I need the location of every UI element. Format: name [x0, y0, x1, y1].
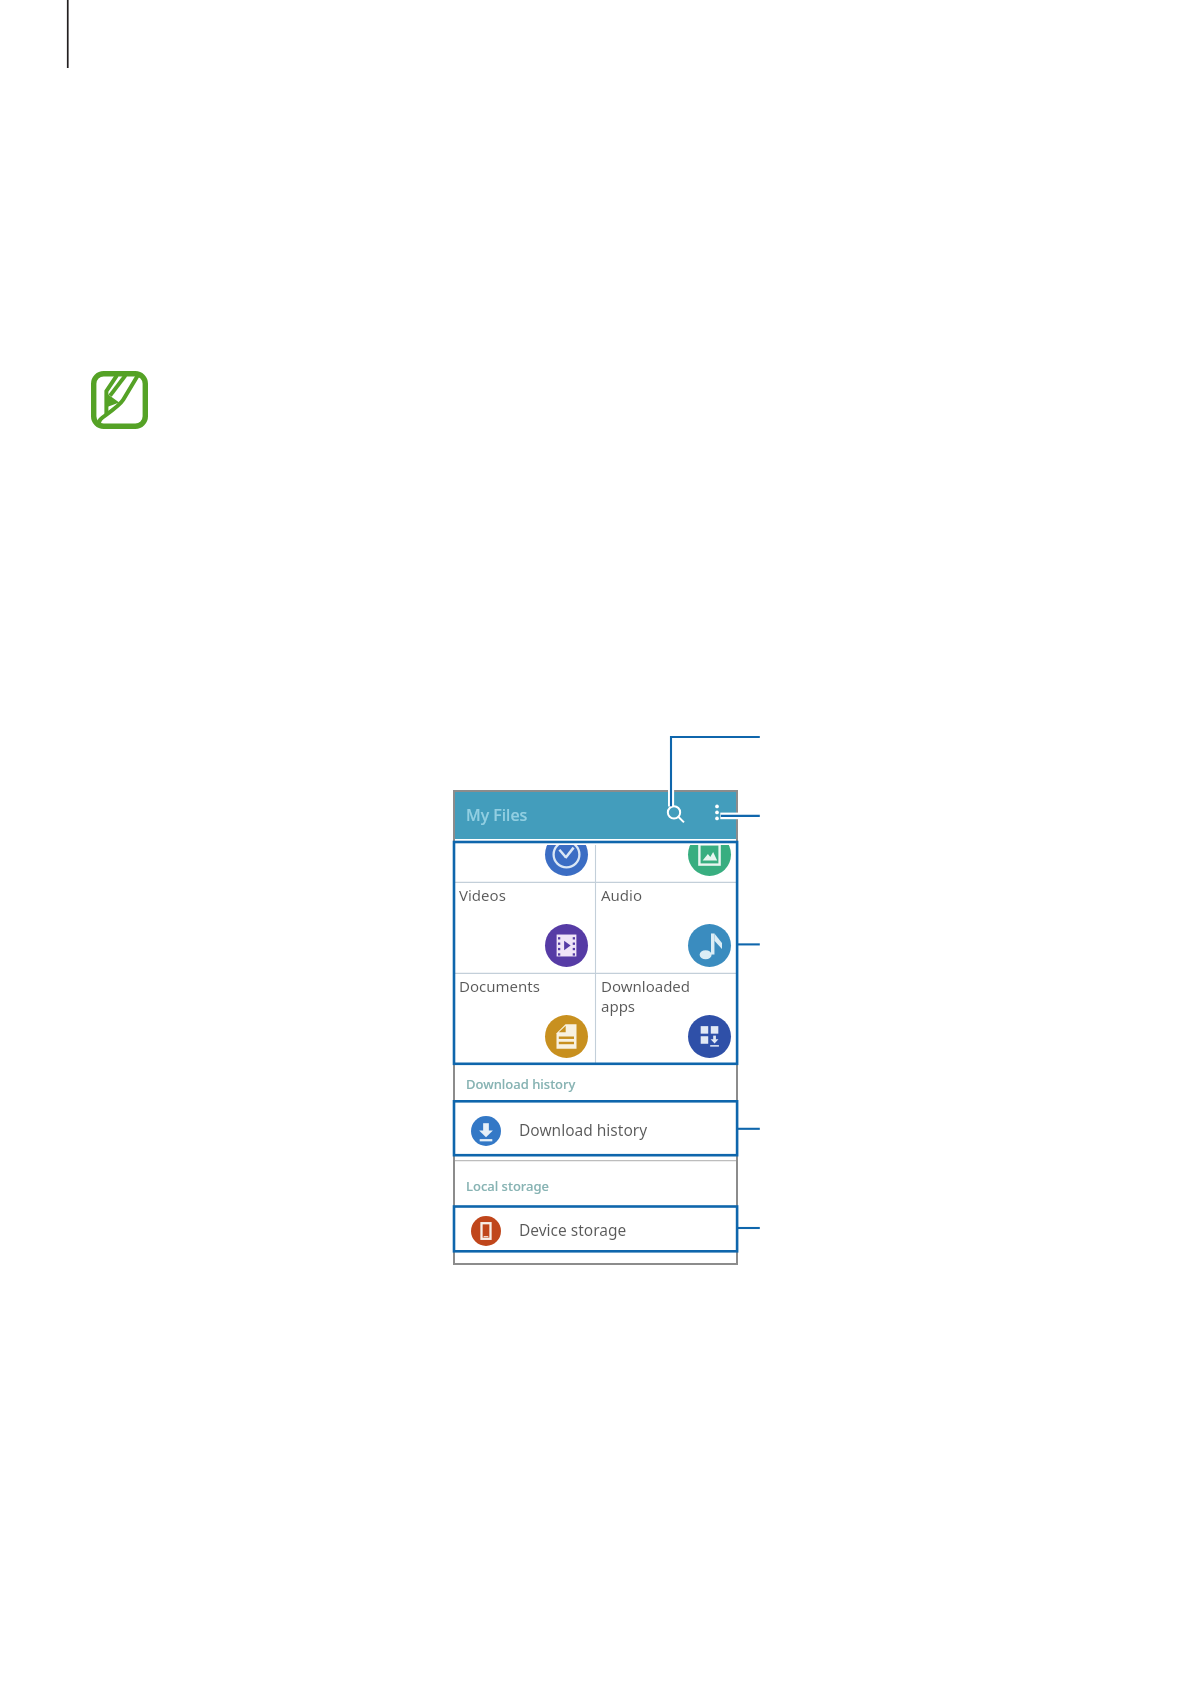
button[interactable]: Downloaded apps: [595, 974, 738, 1063]
button[interactable]: Audio: [595, 883, 738, 974]
staticText: Download history: [466, 1075, 576, 1093]
button[interactable]: Local storage: [453, 1161, 738, 1201]
button[interactable]: Images: [595, 845, 738, 883]
button[interactable]: Recent files: [453, 845, 595, 883]
staticText: Audio: [601, 885, 695, 905]
staticText: Downloaded apps: [601, 976, 695, 1016]
staticText: Documents: [459, 976, 553, 996]
staticText: My Files: [466, 804, 528, 826]
button[interactable]: Videos: [453, 883, 595, 974]
button[interactable]: More options: [697, 790, 737, 839]
button[interactable]: Documents: [453, 974, 595, 1063]
button[interactable]: Download history: [453, 1063, 738, 1101]
button[interactable]: Search: [654, 790, 694, 839]
staticText: Download history: [519, 1119, 648, 1140]
button[interactable]: Download history: [453, 1101, 738, 1160]
staticText: Device storage: [519, 1219, 627, 1240]
staticText: Videos: [459, 885, 553, 905]
staticText: Local storage: [466, 1177, 550, 1195]
button[interactable]: Device storage: [453, 1201, 738, 1260]
